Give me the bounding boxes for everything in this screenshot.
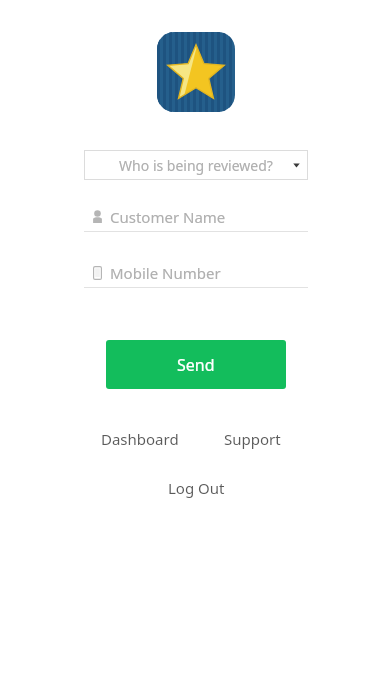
- other: App logo: [157, 32, 235, 112]
- staticText: Send: [177, 354, 215, 376]
- staticText: Dashboard: [101, 429, 179, 449]
- button[interactable]: Dashboard: [84, 424, 196, 454]
- button[interactable]: Send: [106, 340, 286, 389]
- other: Customer: [84, 210, 110, 223]
- staticText: Log Out: [168, 478, 225, 498]
- staticText: Mobile Number: [110, 263, 221, 283]
- other: Mobile: [84, 266, 110, 280]
- button[interactable]: Log Out: [168, 473, 225, 503]
- button[interactable]: Support: [196, 424, 308, 454]
- staticText: Customer Name: [110, 207, 226, 227]
- button[interactable]: Customer: [84, 202, 308, 232]
- button[interactable]: Mobile: [84, 258, 308, 288]
- staticText: Who is being reviewed?: [119, 156, 273, 175]
- button[interactable]: Who is being reviewed?: [84, 150, 308, 180]
- staticText: Support: [224, 429, 281, 449]
